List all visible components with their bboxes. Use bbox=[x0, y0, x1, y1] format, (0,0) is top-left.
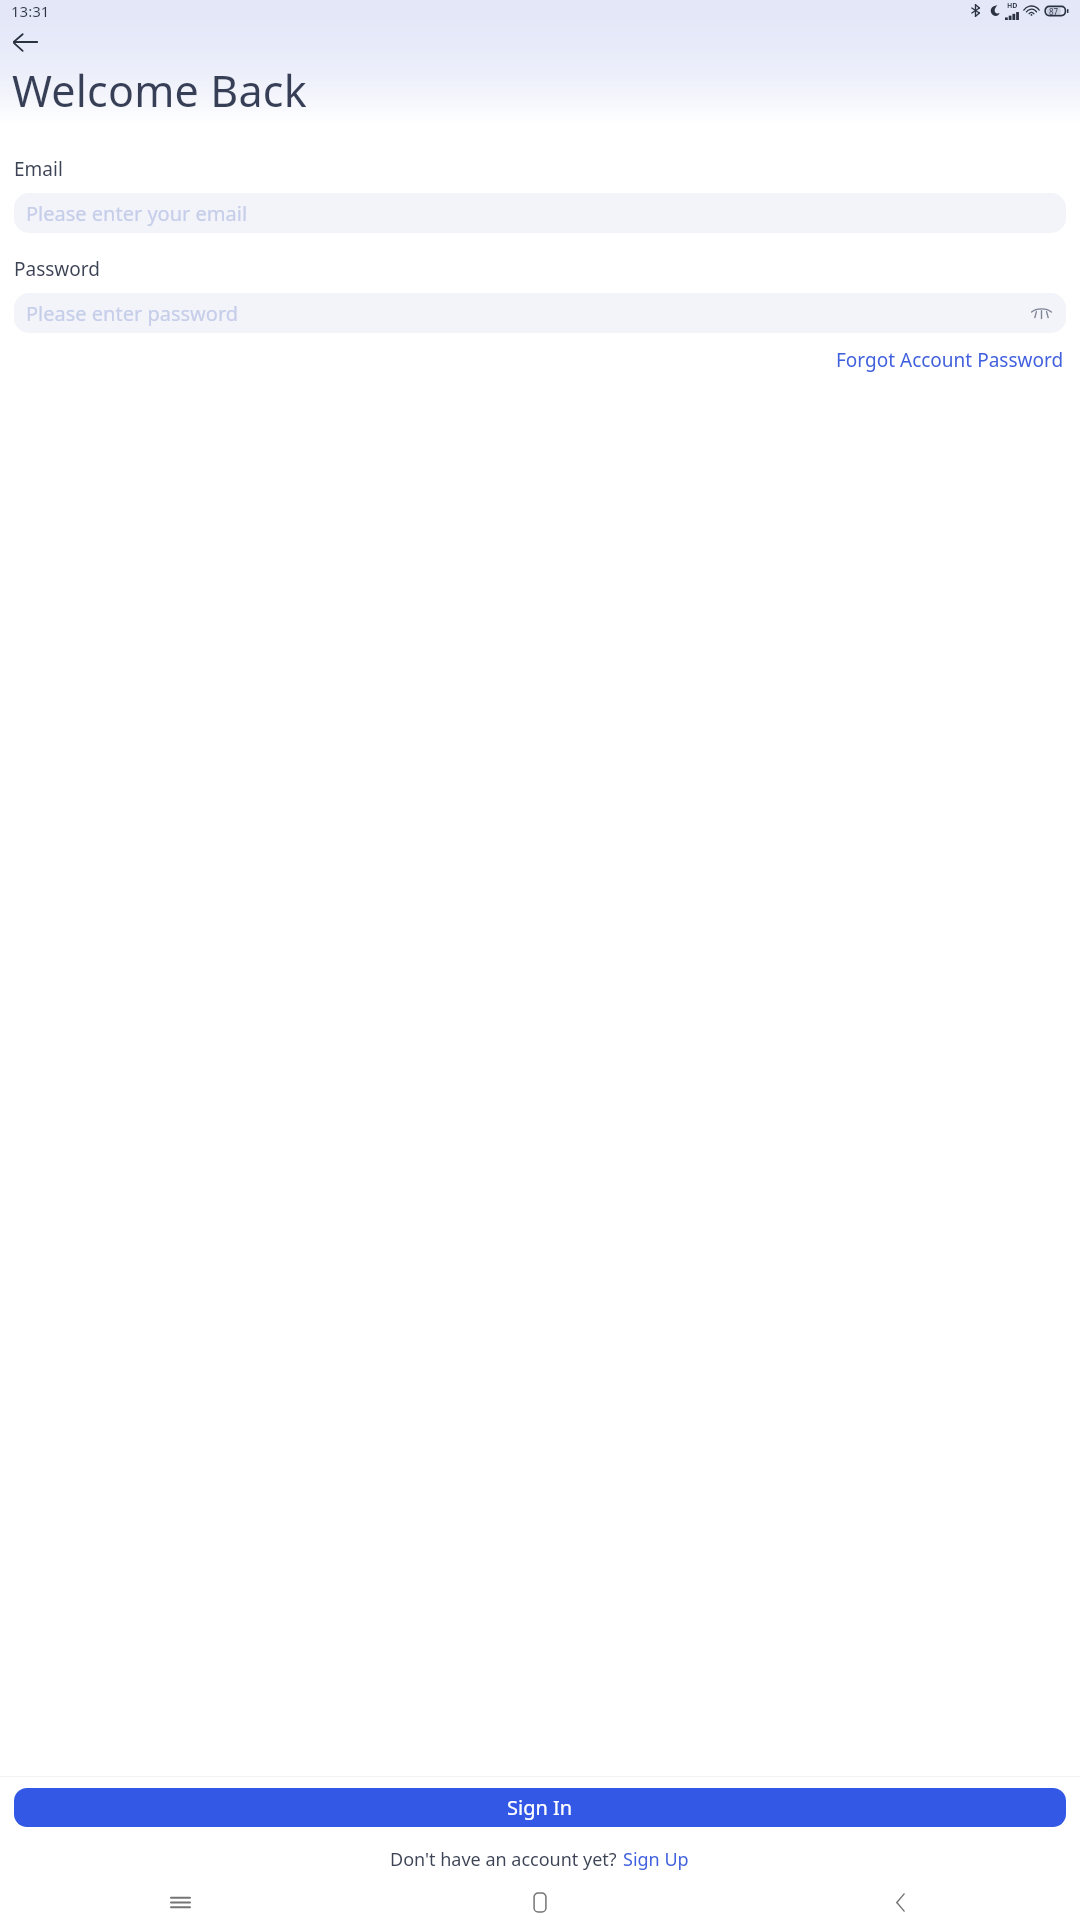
button[interactable]: Please enter password bbox=[14, 293, 1066, 333]
staticText: Email bbox=[14, 156, 63, 182]
staticText: Password bbox=[14, 256, 100, 282]
staticText: 87 bbox=[1049, 6, 1059, 17]
button[interactable]: Back bbox=[7, 24, 43, 60]
button[interactable]: Recent apps bbox=[0, 1884, 360, 1920]
staticText: Don't have an account yet? bbox=[390, 1847, 622, 1872]
button[interactable]: Back bbox=[720, 1884, 1080, 1920]
staticText: Sign Up bbox=[623, 1847, 689, 1872]
staticText: 13:31 bbox=[11, 1, 50, 21]
staticText: Forgot Account Password bbox=[836, 347, 1064, 373]
staticText: HD bbox=[1007, 1, 1018, 11]
staticText: Please enter password bbox=[26, 300, 1028, 327]
button[interactable]: Sign Up bbox=[622, 1844, 690, 1875]
button[interactable]: Show password bbox=[1028, 300, 1055, 327]
button[interactable]: Please enter your email bbox=[14, 193, 1066, 233]
staticText: Welcome Back bbox=[12, 61, 307, 120]
button[interactable]: Home bbox=[360, 1884, 720, 1920]
button[interactable]: Forgot Account Password bbox=[834, 343, 1066, 377]
staticText: Sign In bbox=[507, 1794, 573, 1821]
staticText: Please enter your email bbox=[26, 200, 1055, 227]
button[interactable]: Sign In bbox=[14, 1788, 1066, 1827]
